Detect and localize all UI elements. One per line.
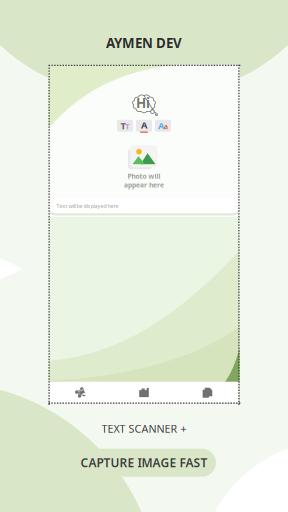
staticText: appear here [124,181,164,189]
staticText: TEXT SCANNER + [101,422,186,436]
button[interactable]: A [136,120,152,132]
staticText: AYMEN DEV [106,34,182,52]
staticText: Text will be displayed here [56,202,118,209]
button[interactable]: Share [48,387,112,399]
staticText: CAPTURE IMAGE FAST [80,455,207,471]
staticText: T [120,119,125,132]
staticText: Hi [136,94,150,112]
button[interactable]: Camera [112,387,176,399]
button[interactable]: TEXT SCANNER + [99,418,189,440]
staticText: Photo will [127,172,160,181]
button[interactable]: CAPTURE IMAGE FAST [72,449,216,477]
staticText: T [125,122,129,131]
staticText: A [141,119,147,131]
button[interactable]: A [155,120,171,132]
staticText: a [164,122,168,131]
staticText: A [158,119,164,132]
button[interactable]: Copy [176,387,239,399]
button[interactable]: T [117,120,133,132]
